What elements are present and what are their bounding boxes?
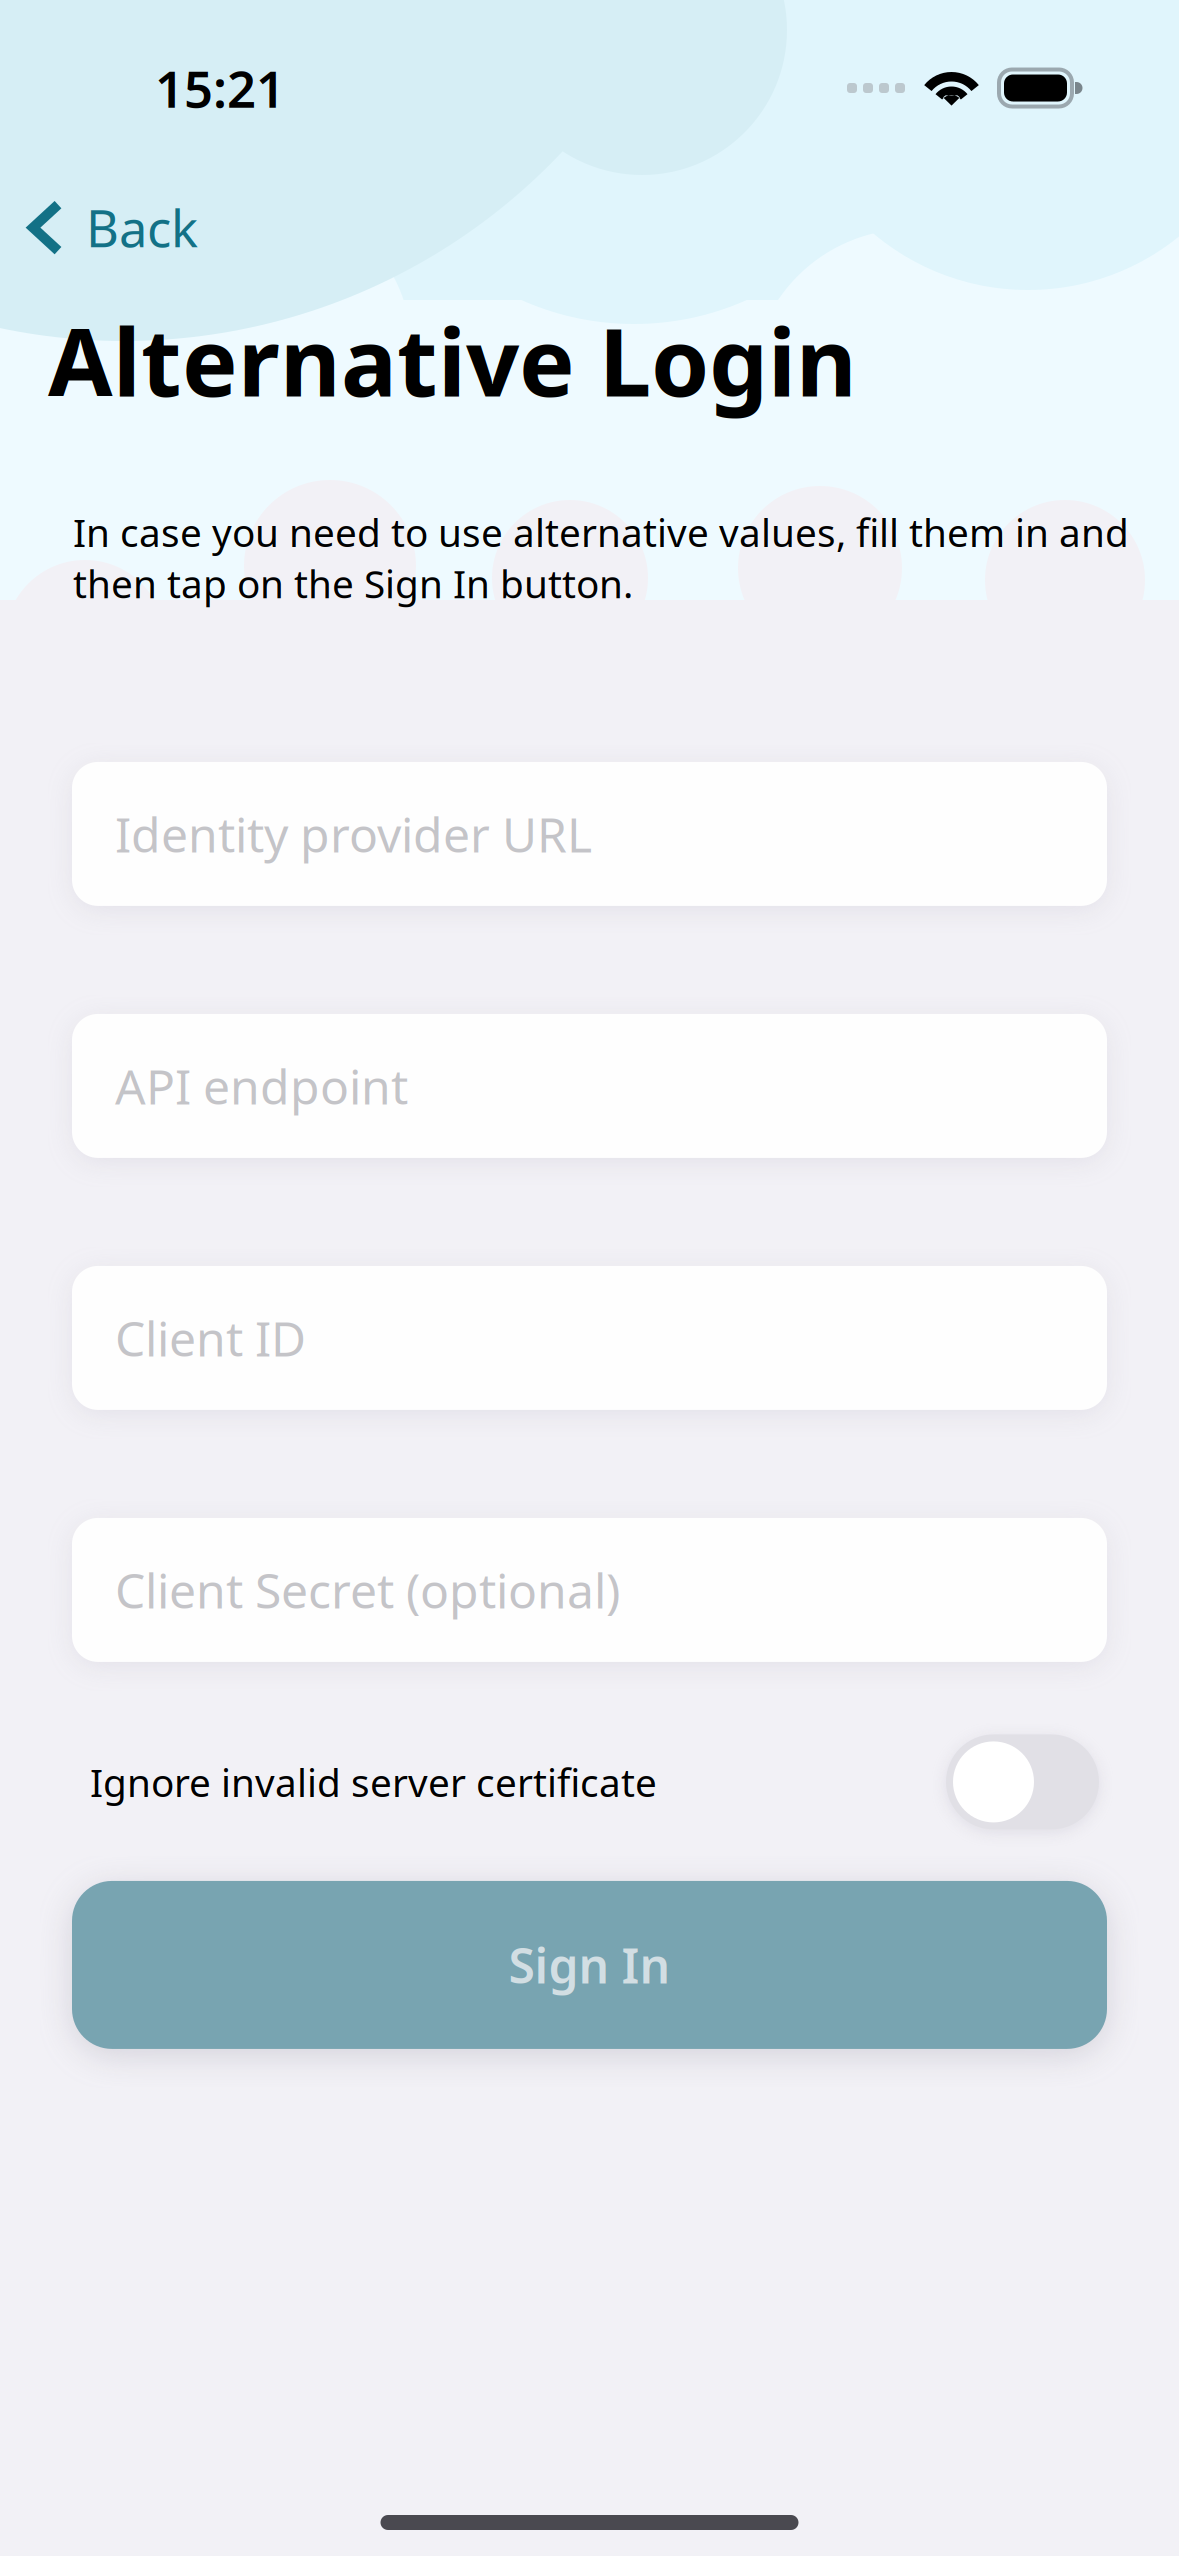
staticText: Client ID xyxy=(115,1306,306,1370)
staticText: 15:21 xyxy=(155,54,285,122)
staticText: Back xyxy=(86,194,198,261)
staticText: In case you need to use alternative valu… xyxy=(73,506,1129,609)
button[interactable]: Sign In xyxy=(72,1881,1107,2049)
staticText: Client Secret (optional) xyxy=(115,1558,620,1622)
button[interactable]: Client Secret (optional) xyxy=(72,1518,1107,1662)
button[interactable]: API endpoint xyxy=(72,1014,1107,1158)
staticText: Alternative Login xyxy=(48,298,857,422)
staticText: Ignore invalid server certificate xyxy=(90,1756,657,1807)
staticText: Identity provider URL xyxy=(115,802,592,866)
staticText: API endpoint xyxy=(115,1054,408,1118)
button[interactable]: Client ID xyxy=(72,1266,1107,1410)
button[interactable]: Ignore invalid server certificate xyxy=(72,1717,1107,1847)
button[interactable]: Back xyxy=(0,176,1179,279)
staticText: Sign In xyxy=(508,1933,670,1997)
button[interactable]: Identity provider URL xyxy=(72,762,1107,906)
